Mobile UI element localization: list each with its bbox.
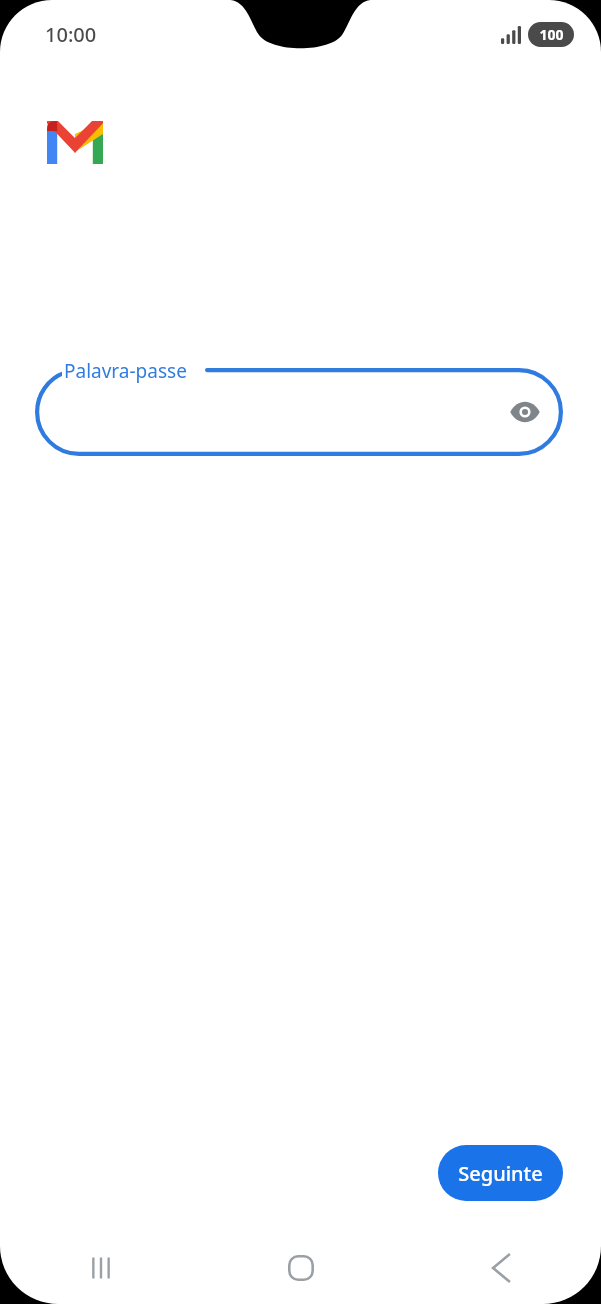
button[interactable]: Mostrar palavra-passe <box>35 368 563 456</box>
button[interactable]: Início <box>201 1232 401 1304</box>
button[interactable]: Voltar <box>401 1232 601 1304</box>
button[interactable]: Recentes <box>0 1232 201 1304</box>
staticText: 100 <box>539 25 564 44</box>
button[interactable]: Seguinte <box>438 1145 563 1201</box>
staticText: Palavra-passe <box>64 358 187 384</box>
staticText: Seguinte <box>458 1160 543 1187</box>
button[interactable]: Mostrar palavra-passe <box>501 388 549 436</box>
staticText: 10:00 <box>45 21 97 48</box>
